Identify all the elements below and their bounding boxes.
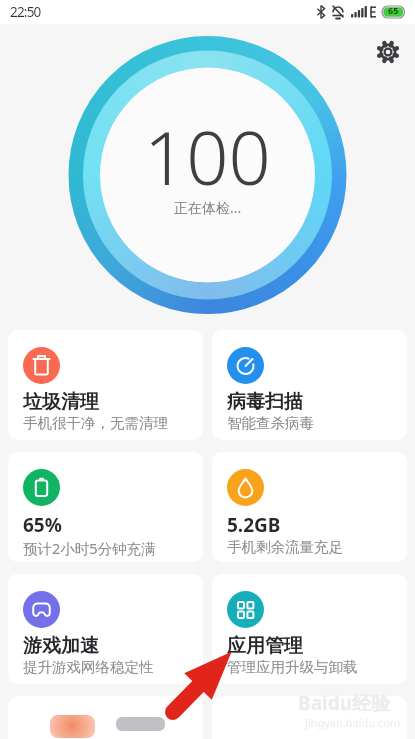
staticText: Baidu经验 xyxy=(298,690,391,716)
button[interactable]: 应用管理 xyxy=(212,574,407,684)
button[interactable]: 5.2GB xyxy=(212,452,407,562)
button[interactable] xyxy=(8,696,203,739)
button[interactable]: 65% xyxy=(8,452,203,562)
button[interactable]: 垃圾清理 xyxy=(8,330,203,440)
staticText: jingyan.baidu.com xyxy=(305,715,401,730)
button[interactable]: 病毒扫描 xyxy=(212,330,407,440)
staticText: 应用管理 xyxy=(227,634,303,658)
button[interactable] xyxy=(212,696,407,739)
staticText: 提升游戏网络稳定性 xyxy=(23,658,154,676)
staticText: 手机剩余流量充足 xyxy=(227,538,343,556)
button[interactable] xyxy=(376,40,400,64)
staticText: 管理应用升级与卸载 xyxy=(227,658,358,676)
staticText: 病毒扫描 xyxy=(227,390,303,414)
staticText: 65% xyxy=(23,512,62,538)
staticText: 智能查杀病毒 xyxy=(227,414,314,432)
staticText: 预计2小时5分钟充满 xyxy=(23,538,156,558)
staticText: 65 xyxy=(388,4,399,16)
button[interactable]: 游戏加速 xyxy=(8,574,203,684)
staticText: 5.2GB xyxy=(227,512,281,538)
staticText: 垃圾清理 xyxy=(23,390,99,414)
staticText: 手机很干净，无需清理 xyxy=(23,414,168,432)
staticText: 正在体检... xyxy=(174,198,242,217)
staticText: 22:50 xyxy=(10,3,41,21)
staticText: 游戏加速 xyxy=(23,634,99,658)
staticText: 100 xyxy=(144,106,271,200)
